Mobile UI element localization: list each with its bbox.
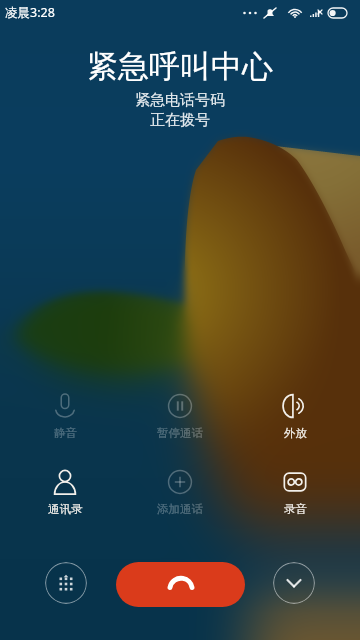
button[interactable]: 外放 [245, 393, 345, 440]
button[interactable]: 暂停通话 [130, 393, 230, 440]
button[interactable]: 通讯录 [15, 469, 115, 516]
button[interactable]: 静音 [15, 393, 115, 440]
button[interactable]: 添加通话 [130, 469, 230, 516]
staticText: 暂停通话 [157, 426, 203, 440]
staticText: 静音 [54, 426, 77, 440]
staticText: 紧急电话号码 [0, 91, 360, 110]
button[interactable]: End call [116, 562, 245, 607]
staticText: 录音 [284, 502, 307, 516]
button[interactable]: Collapse [273, 562, 315, 604]
staticText: 通讯录 [48, 502, 83, 516]
staticText: 紧急呼叫中心 [0, 47, 360, 86]
staticText: 凌晨3:28 [5, 4, 55, 21]
button[interactable]: 录音 [245, 469, 345, 516]
button[interactable]: Dialpad [45, 562, 87, 604]
staticText: 正在拨号 [0, 111, 360, 130]
staticText: 外放 [284, 426, 307, 440]
staticText: 添加通话 [157, 502, 203, 516]
